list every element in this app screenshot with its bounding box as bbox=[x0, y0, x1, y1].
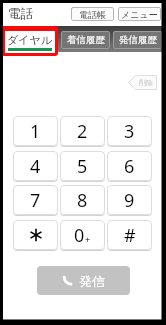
button[interactable]: 3 bbox=[107, 116, 152, 146]
button[interactable]: 0 bbox=[60, 220, 105, 250]
staticText: 8 bbox=[77, 188, 88, 213]
button[interactable]: # bbox=[107, 220, 152, 250]
staticText: 電話 bbox=[8, 6, 34, 22]
staticText: 9 bbox=[124, 188, 135, 213]
staticText: 発信履歴 bbox=[119, 34, 157, 46]
staticText: 削除 bbox=[139, 78, 153, 87]
button[interactable]: 削除 bbox=[128, 75, 157, 90]
staticText: 1 bbox=[30, 119, 41, 144]
staticText: 発信 bbox=[79, 273, 105, 289]
button[interactable]: 着信履歴 bbox=[61, 31, 110, 49]
button[interactable]: 8 bbox=[60, 185, 105, 215]
button[interactable]: 9 bbox=[107, 185, 152, 215]
staticText: 7 bbox=[30, 188, 41, 213]
button[interactable]: 発信履歴 bbox=[113, 31, 162, 49]
staticText: 5 bbox=[77, 154, 88, 179]
staticText: 4 bbox=[30, 154, 41, 179]
button[interactable]: 2 bbox=[60, 116, 105, 146]
staticText: 0 bbox=[74, 223, 85, 248]
staticText: # bbox=[124, 223, 136, 248]
staticText: ダイヤル bbox=[7, 33, 53, 47]
staticText: メニュー bbox=[121, 9, 158, 20]
button[interactable]: 発信 bbox=[37, 266, 130, 295]
button[interactable]: 7 bbox=[13, 185, 58, 215]
button[interactable]: 6 bbox=[107, 151, 152, 181]
staticText: 3 bbox=[124, 119, 135, 144]
button[interactable]: 電話帳 bbox=[71, 7, 114, 21]
staticText: 2 bbox=[77, 119, 88, 144]
button[interactable]: ダイヤル bbox=[1, 26, 58, 56]
button[interactable]: メニュー bbox=[118, 7, 161, 21]
staticText: + bbox=[85, 233, 91, 245]
button[interactable]: 5 bbox=[60, 151, 105, 181]
staticText: 6 bbox=[124, 154, 135, 179]
button[interactable] bbox=[13, 220, 58, 250]
button[interactable]: 1 bbox=[13, 116, 58, 146]
staticText: 電話帳 bbox=[79, 9, 106, 20]
staticText: 着信履歴 bbox=[67, 34, 105, 46]
button[interactable]: 4 bbox=[13, 151, 58, 181]
